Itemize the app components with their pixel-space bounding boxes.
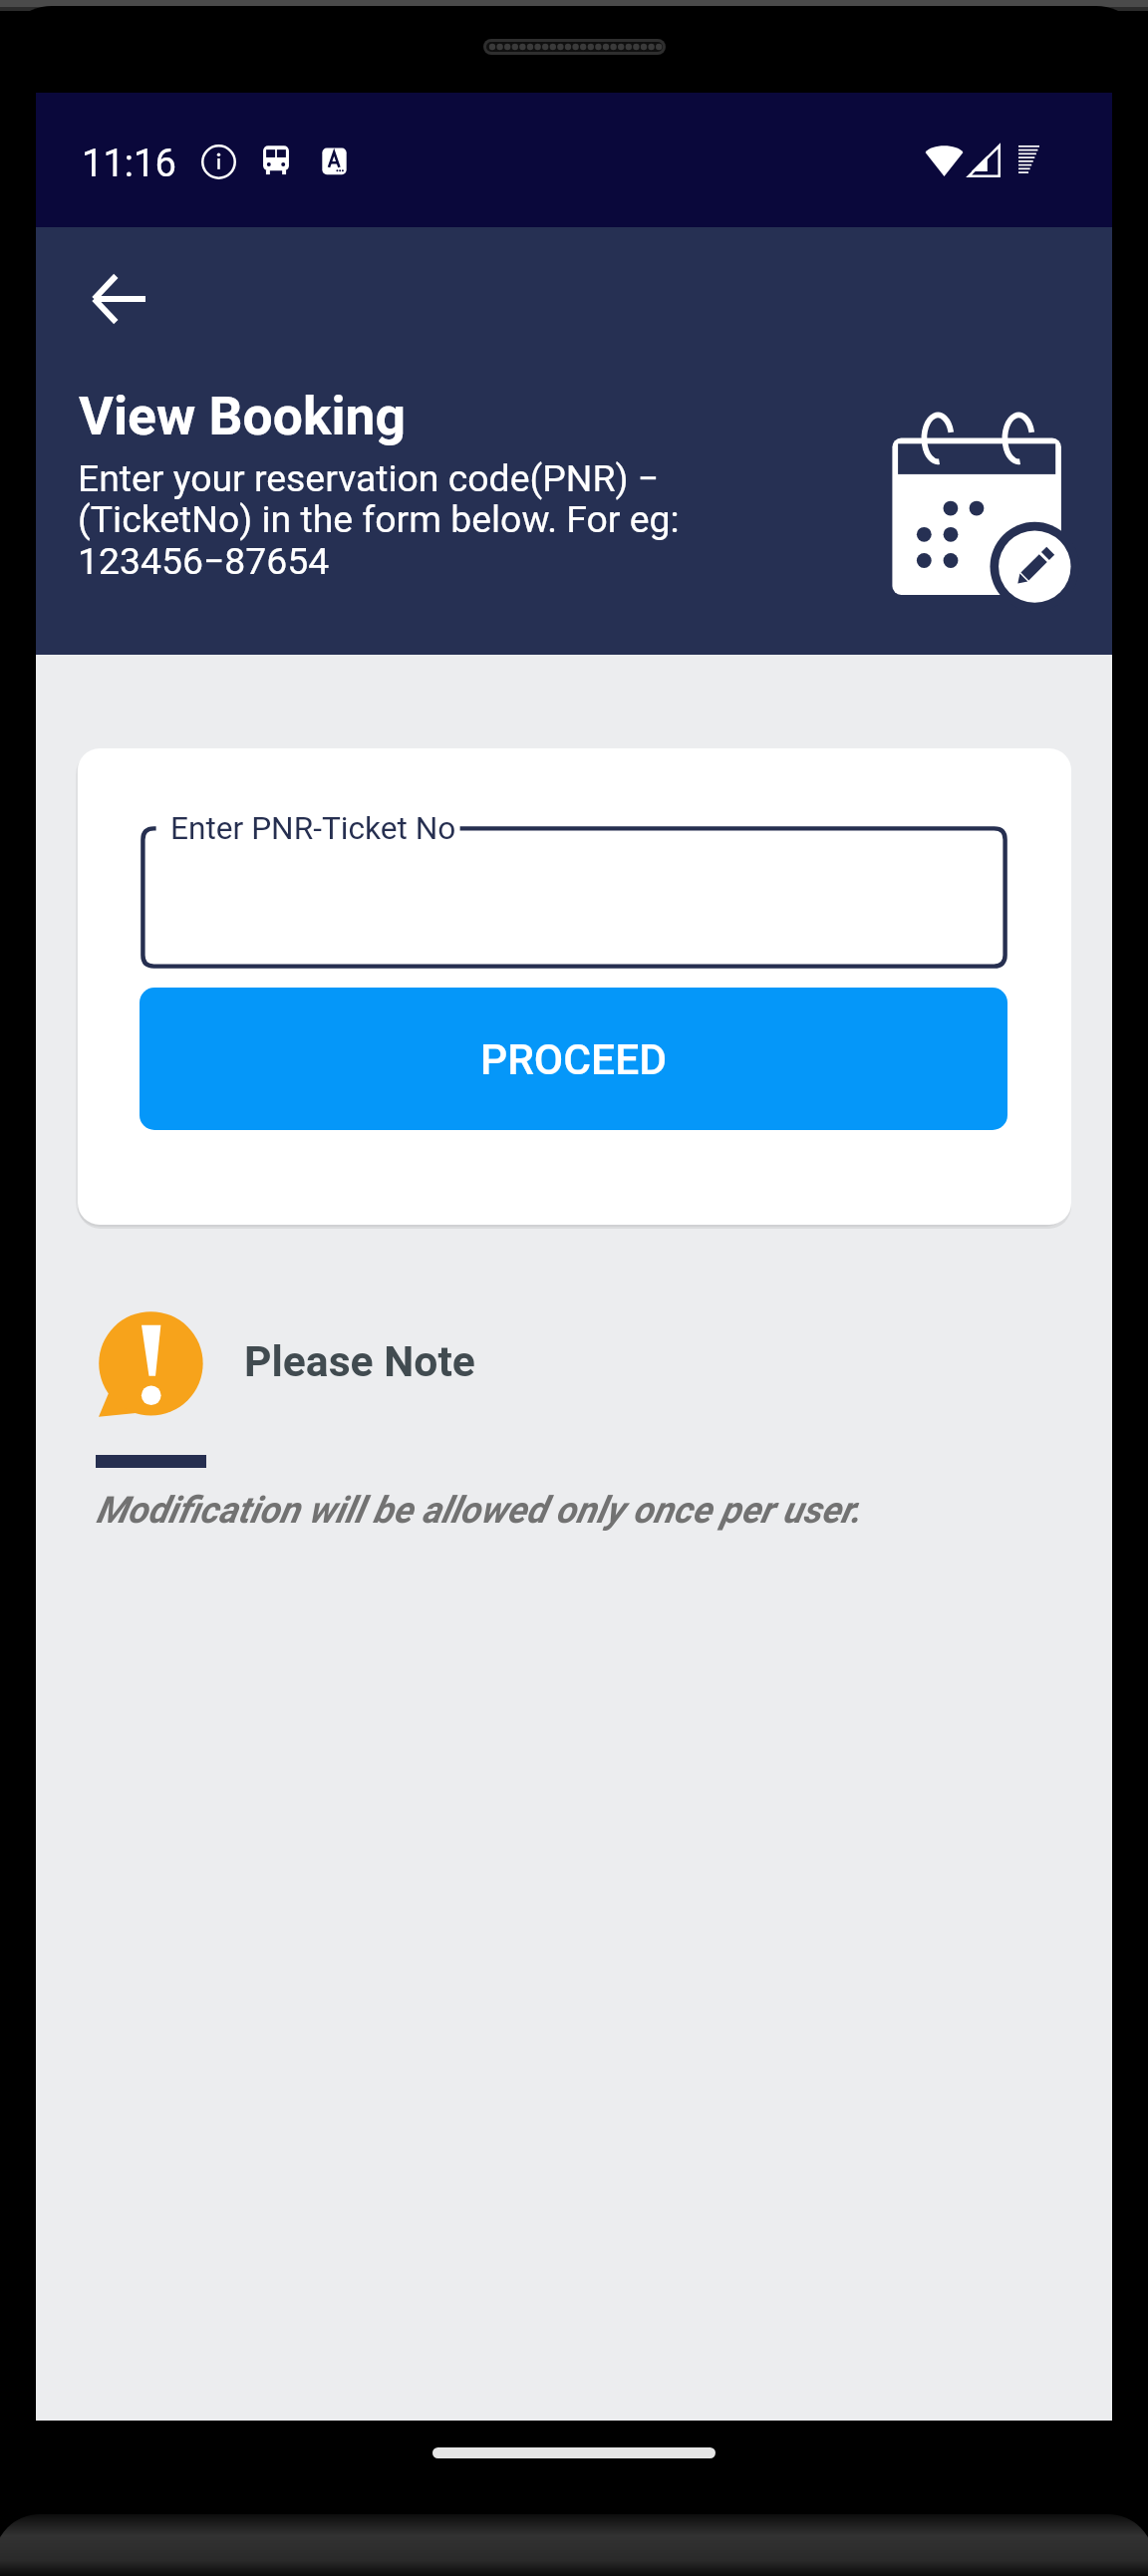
- staticText: Modification will be allowed only once p…: [96, 1488, 861, 1532]
- button[interactable]: Back: [47, 227, 190, 371]
- staticText: View Booking: [79, 385, 406, 447]
- button[interactable]: PROCEED: [140, 988, 1007, 1130]
- staticText: Please Note: [244, 1336, 475, 1386]
- staticText: PROCEED: [480, 1034, 668, 1084]
- staticText: Enter your reservation code(PNR) − (Tick…: [78, 456, 682, 583]
- button[interactable]: Enter PNR-Ticket No: [139, 824, 1009, 971]
- staticText: Enter PNR-Ticket No: [170, 810, 456, 847]
- staticText: 11:16: [82, 142, 176, 186]
